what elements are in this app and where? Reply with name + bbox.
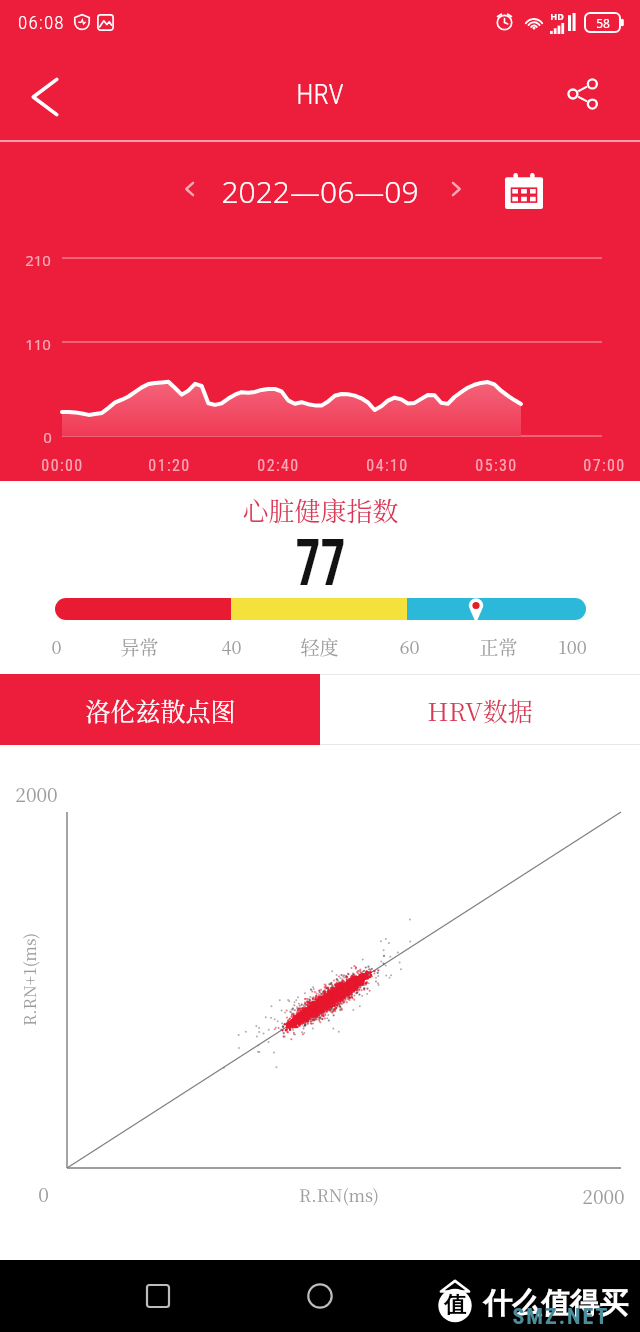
staticText: 100 bbox=[558, 633, 587, 659]
staticText: SMZ.NET bbox=[512, 1304, 610, 1330]
staticText: 58 bbox=[596, 15, 610, 31]
staticText: HRV数据 bbox=[427, 692, 533, 728]
staticText: 心脏健康指数 bbox=[242, 491, 399, 528]
staticText: 洛伦兹散点图 bbox=[85, 692, 236, 728]
staticText: 2022—06—09 bbox=[221, 171, 419, 212]
staticText: 轻度 bbox=[300, 633, 339, 660]
staticText: 210 bbox=[25, 250, 51, 270]
staticText: 0 bbox=[38, 1180, 49, 1207]
button[interactable]: Home bbox=[292, 1268, 348, 1324]
staticText: 07:00 bbox=[583, 456, 626, 475]
staticText: 异常 bbox=[120, 633, 159, 660]
button[interactable]: HRV数据 bbox=[320, 674, 640, 745]
staticText: R.RN(ms) bbox=[299, 1182, 379, 1206]
staticText: 值 bbox=[444, 1291, 466, 1319]
button[interactable]: Previous day bbox=[171, 170, 209, 208]
button[interactable]: Next day bbox=[437, 170, 475, 208]
staticText: 110 bbox=[25, 334, 51, 354]
staticText: 05:30 bbox=[475, 456, 518, 475]
staticText: 00:00 bbox=[41, 456, 84, 475]
staticText: 01:20 bbox=[148, 456, 191, 475]
staticText: 77 bbox=[295, 524, 346, 601]
button[interactable]: 洛伦兹散点图 bbox=[0, 674, 320, 745]
button[interactable]: Share bbox=[526, 48, 640, 140]
button[interactable]: Recents bbox=[130, 1268, 186, 1324]
staticText: 02:40 bbox=[257, 456, 300, 475]
staticText: 04:10 bbox=[366, 456, 409, 475]
button[interactable]: Calendar bbox=[504, 172, 544, 210]
staticText: 40 bbox=[221, 633, 242, 659]
staticText: HRV bbox=[296, 78, 344, 111]
staticText: 0 bbox=[43, 427, 52, 447]
staticText: 0 bbox=[51, 633, 62, 659]
button[interactable]: Back bbox=[0, 48, 76, 140]
staticText: 60 bbox=[399, 633, 420, 659]
staticText: 什么值得买 bbox=[483, 1285, 628, 1322]
staticText: 06:08 bbox=[18, 11, 65, 33]
staticText: R.RN+1(ms) bbox=[17, 932, 40, 1026]
staticText: 正常 bbox=[479, 633, 518, 660]
staticText: 2000 bbox=[15, 780, 58, 807]
staticText: 2000 bbox=[582, 1182, 625, 1209]
staticText: HD bbox=[550, 10, 564, 22]
